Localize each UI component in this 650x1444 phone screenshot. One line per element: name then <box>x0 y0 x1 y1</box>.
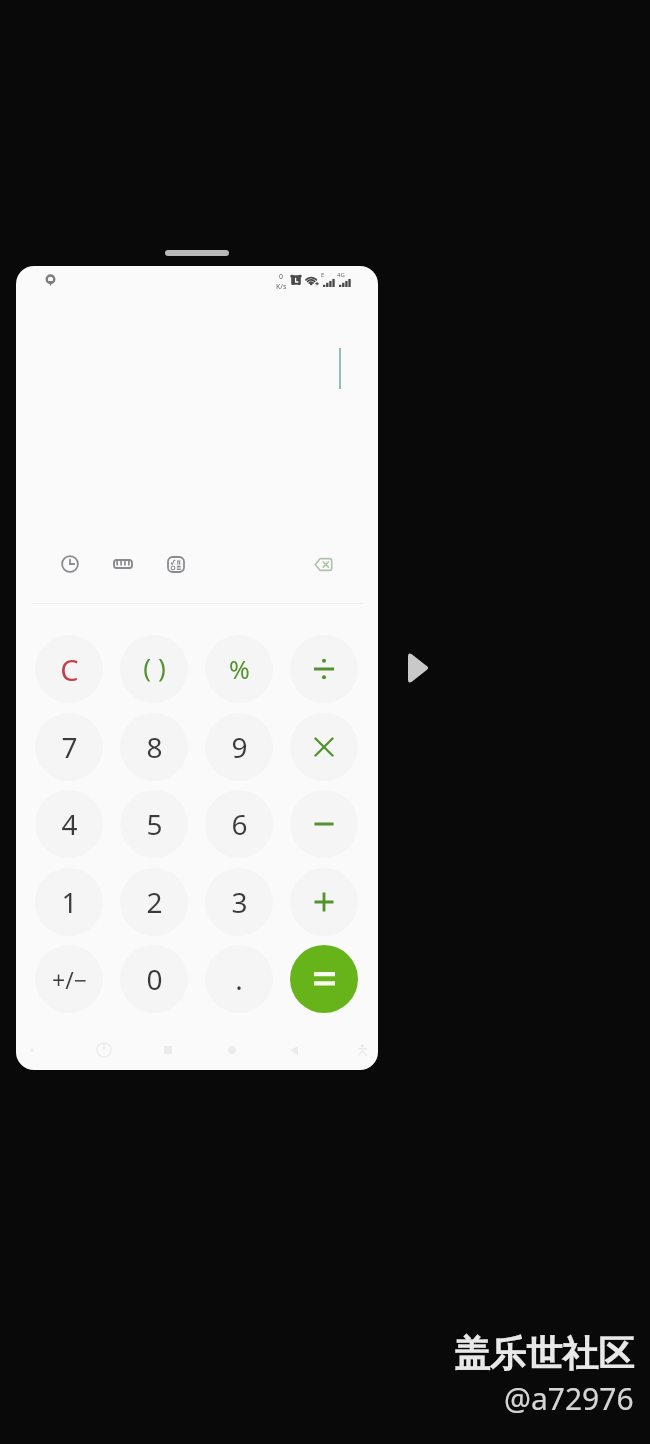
button[interactable]: 5 <box>120 790 188 858</box>
button[interactable]: Equals <box>290 945 358 1013</box>
staticText: E <box>321 271 325 279</box>
button[interactable]: Back <box>284 1040 304 1060</box>
button[interactable]: 6 <box>205 790 273 858</box>
staticText: . <box>235 960 243 998</box>
staticText: ( ) <box>143 649 166 684</box>
button[interactable]: Scientific calculator <box>148 536 204 592</box>
staticText: 盖乐世社区 <box>454 1331 634 1376</box>
button[interactable]: 9 <box>205 713 273 781</box>
button[interactable]: +/− <box>35 945 103 1013</box>
staticText: @a72976 <box>504 1378 634 1419</box>
staticText: C <box>60 650 79 689</box>
staticText: 4 <box>61 805 78 843</box>
staticText: 0 <box>146 960 163 998</box>
staticText: 9 <box>231 728 248 766</box>
staticText: 0 <box>279 272 284 282</box>
button[interactable]: Backspace <box>295 536 351 592</box>
button[interactable]: 2 <box>120 868 188 936</box>
button[interactable]: 8 <box>120 713 188 781</box>
button[interactable]: % <box>205 635 273 703</box>
staticText: K/s <box>276 282 287 292</box>
button[interactable]: Recents <box>158 1040 178 1060</box>
button[interactable]: Plus <box>290 868 358 936</box>
button[interactable]: Divide <box>290 635 358 703</box>
staticText: % <box>229 652 250 686</box>
button[interactable]: Multiply <box>290 713 358 781</box>
staticText: 8 <box>146 728 163 766</box>
button[interactable]: 1 <box>35 868 103 936</box>
staticText: 4G <box>337 271 345 279</box>
staticText: 3 <box>231 883 248 921</box>
button[interactable]: Play <box>404 648 432 688</box>
button[interactable]: History <box>42 536 98 592</box>
button[interactable]: C <box>35 635 103 703</box>
button[interactable]: . <box>205 945 273 1013</box>
staticText: +/− <box>52 964 87 995</box>
button[interactable]: Minus <box>290 790 358 858</box>
button[interactable]: Unit converter <box>95 536 151 592</box>
button[interactable]: 7 <box>35 713 103 781</box>
button[interactable]: 0 <box>120 945 188 1013</box>
button[interactable]: Power <box>92 1038 116 1062</box>
staticText: 2 <box>146 883 163 921</box>
staticText: 5 <box>146 805 163 843</box>
staticText: 7 <box>61 728 78 766</box>
staticText: 1 <box>61 883 78 921</box>
button[interactable]: Accessibility <box>352 1040 372 1060</box>
staticText: 6 <box>231 805 248 843</box>
button[interactable]: ( ) <box>120 635 188 703</box>
button[interactable]: Home <box>222 1040 242 1060</box>
button[interactable]: 3 <box>205 868 273 936</box>
button[interactable]: 4 <box>35 790 103 858</box>
